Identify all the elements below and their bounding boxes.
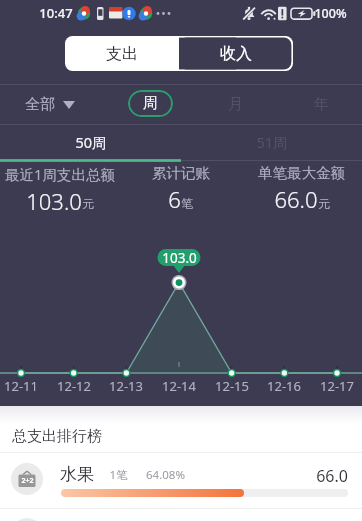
staticText: 收入 bbox=[220, 44, 252, 64]
staticText: 12-13 bbox=[109, 377, 143, 395]
staticText: 周 bbox=[143, 94, 158, 113]
staticText: 年 bbox=[314, 95, 329, 114]
staticText: 12-16 bbox=[267, 377, 301, 395]
button[interactable]: 月 bbox=[219, 85, 251, 124]
staticText: 12-12 bbox=[57, 377, 91, 395]
staticText: 累计记账 bbox=[152, 164, 210, 182]
staticText: 元 bbox=[82, 196, 94, 211]
staticText: 100% bbox=[314, 5, 347, 22]
staticText: 总支出排行榜 bbox=[12, 427, 102, 446]
staticText: 64.08% bbox=[146, 467, 185, 483]
staticText: 12-11 bbox=[4, 377, 38, 395]
staticText: 66.0 bbox=[274, 184, 318, 214]
staticText: 66.0 bbox=[316, 465, 348, 487]
staticText: 全部 bbox=[25, 95, 55, 114]
staticText: 1笔 bbox=[109, 467, 128, 483]
button[interactable]: 收入 bbox=[179, 36, 293, 71]
button[interactable]: 2+2 bbox=[0, 453, 362, 506]
staticText: 51周 bbox=[256, 132, 288, 152]
staticText: 10:47 bbox=[39, 4, 73, 22]
staticText: 最近1周支出总额 bbox=[5, 164, 115, 184]
staticText: 103.0 bbox=[162, 249, 197, 266]
staticText: 50周 bbox=[75, 132, 107, 152]
staticText: 笔 bbox=[181, 196, 193, 211]
staticText: 支出 bbox=[106, 44, 138, 64]
staticText: 2+2 bbox=[21, 476, 34, 486]
staticText: 月 bbox=[228, 95, 243, 114]
button[interactable]: 全部 bbox=[25, 95, 75, 114]
button[interactable]: 周 bbox=[128, 90, 173, 117]
staticText: 12-14 bbox=[162, 377, 196, 395]
staticText: 水果 bbox=[60, 464, 94, 485]
button[interactable]: 50周 bbox=[0, 125, 181, 159]
staticText: 6 bbox=[168, 184, 181, 214]
staticText: 12-15 bbox=[215, 377, 249, 395]
button[interactable]: 年 bbox=[305, 85, 337, 124]
staticText: 12-17 bbox=[320, 377, 354, 395]
button[interactable]: 支出 bbox=[65, 36, 179, 71]
staticText: 103.0 bbox=[26, 186, 82, 214]
staticText: 元 bbox=[318, 196, 330, 211]
staticText: 单笔最大金额 bbox=[258, 164, 345, 182]
